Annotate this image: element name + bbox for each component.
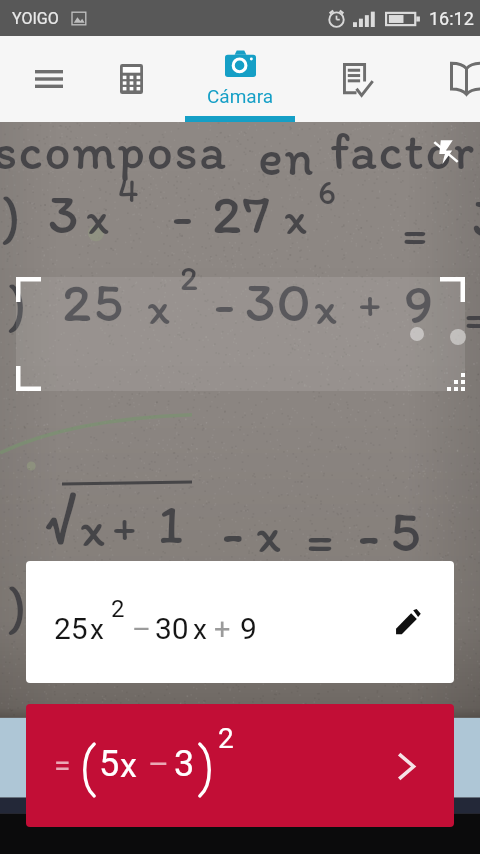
staticText: 3 — [472, 184, 480, 251]
staticText: 3 — [174, 743, 195, 785]
staticText: 25 — [54, 611, 88, 646]
button[interactable]: Edit — [386, 600, 430, 644]
staticText: = — [306, 508, 335, 568]
staticText: en — [258, 126, 315, 188]
staticText: scomposa — [0, 120, 228, 182]
staticText: x — [86, 190, 109, 245]
button[interactable]: Menu — [8, 36, 90, 122]
staticText: 6 — [318, 172, 336, 213]
button[interactable]: More steps — [384, 744, 428, 788]
staticText: 5 — [390, 496, 421, 566]
staticText: ) — [8, 268, 27, 335]
staticText: - — [172, 184, 193, 246]
staticText: ) — [8, 570, 27, 637]
staticText: 2 — [180, 258, 198, 299]
button[interactable]: Book — [421, 36, 480, 122]
staticText: x — [314, 280, 337, 335]
staticText: ) — [2, 180, 21, 247]
staticText: x — [80, 498, 105, 558]
button[interactable]: 25 — [26, 561, 454, 683]
button[interactable]: Calculator — [90, 36, 172, 122]
staticText: x — [193, 613, 207, 646]
staticText: + — [358, 274, 382, 327]
button[interactable]: Problems — [313, 36, 403, 122]
staticText: x — [256, 504, 281, 564]
staticText: 2 — [111, 595, 125, 623]
button[interactable]: = — [26, 704, 454, 827]
staticText: = — [402, 204, 428, 259]
staticText: 30 — [245, 268, 313, 335]
staticText: - 3y — [150, 574, 242, 641]
staticText: factor — [330, 120, 476, 182]
staticText: = — [54, 748, 71, 783]
staticText: x — [120, 745, 137, 785]
staticText: YOIGO — [12, 9, 59, 28]
staticText: 9 — [404, 270, 434, 337]
staticText: 5x — [60, 574, 118, 641]
staticText: 5 — [99, 743, 120, 785]
staticText: x — [147, 280, 170, 335]
staticText: √ — [44, 480, 76, 554]
staticText: – — [132, 612, 152, 646]
staticText: 9 — [240, 611, 257, 646]
staticText: 3 — [48, 180, 79, 247]
button[interactable]: Camera — [185, 36, 295, 122]
staticText: x — [284, 190, 307, 245]
staticText: = — [464, 288, 480, 343]
staticText: + — [214, 612, 231, 646]
staticText: - — [358, 502, 380, 567]
button[interactable]: Flash off — [424, 130, 468, 174]
staticText: 27 — [212, 180, 272, 247]
staticText: 1 — [158, 492, 184, 557]
staticText: Cámara — [207, 85, 274, 107]
staticText: 16:12 — [429, 8, 474, 29]
staticText: + — [112, 496, 137, 551]
staticText: - — [222, 500, 244, 565]
staticText: – — [148, 745, 169, 783]
staticText: 4 — [118, 170, 139, 211]
staticText: x — [90, 613, 104, 646]
staticText: 2 — [218, 722, 234, 755]
staticText: - — [214, 272, 235, 334]
staticText: 30 — [155, 611, 189, 646]
staticText: 25 — [62, 268, 125, 335]
